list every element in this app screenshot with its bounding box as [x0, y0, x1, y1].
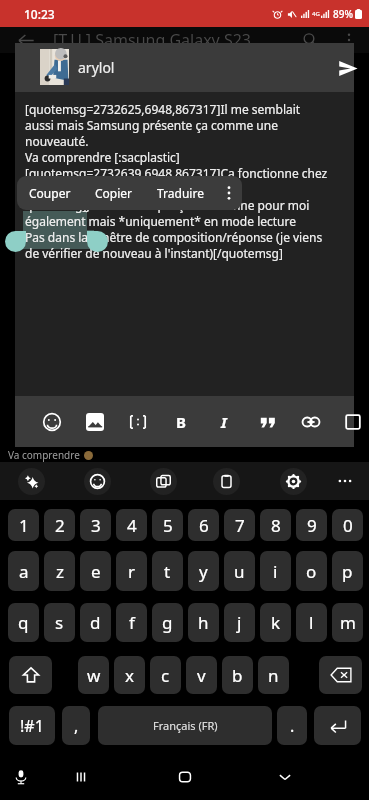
- button[interactable]: Image: [79, 406, 110, 437]
- button[interactable]: Citation: [252, 406, 283, 437]
- button[interactable]: ,: [62, 706, 90, 745]
- button[interactable]: v: [186, 656, 217, 694]
- button[interactable]: y: [188, 551, 219, 591]
- button[interactable]: .: [277, 706, 307, 745]
- staticText: Pas dans la fenêtre de composition/répon…: [25, 229, 323, 245]
- button[interactable]: 1: [8, 509, 39, 541]
- button[interactable]: e: [80, 551, 111, 591]
- button[interactable]: 6: [188, 509, 219, 541]
- button[interactable]: t: [152, 551, 183, 591]
- staticText: i: [273, 560, 278, 583]
- other: Poignée de sélection (fin): [87, 231, 108, 252]
- button[interactable]: z: [44, 551, 75, 591]
- button[interactable]: f: [116, 603, 147, 642]
- staticText: n: [268, 664, 279, 687]
- button[interactable]: w: [78, 656, 109, 694]
- button[interactable]: i: [260, 551, 291, 591]
- staticText: 4G: [312, 10, 320, 18]
- button[interactable]: Accueil: [167, 759, 203, 795]
- button[interactable]: Lien: [295, 406, 326, 437]
- staticText: Va comprendre [:sacplastic]: [25, 149, 180, 165]
- staticText: m: [340, 611, 356, 634]
- staticText: k: [271, 611, 281, 634]
- button[interactable]: s: [44, 603, 75, 642]
- button[interactable]: Presse-papiers: [209, 464, 243, 498]
- button[interactable]: Micro: [3, 759, 39, 795]
- button[interactable]: Plus d'options: [332, 27, 366, 53]
- button[interactable]: !#1: [9, 706, 55, 745]
- button[interactable]: d: [80, 603, 111, 642]
- button[interactable]: o: [296, 551, 327, 591]
- button[interactable]: Couper: [17, 176, 83, 210]
- staticText: p: [342, 560, 353, 583]
- staticText: g: [162, 611, 173, 634]
- button[interactable]: Retour arrière: [319, 656, 362, 694]
- button[interactable]: p: [332, 551, 363, 591]
- staticText: Copier: [95, 185, 133, 201]
- button[interactable]: Plus: [216, 176, 242, 210]
- staticText: z: [56, 560, 64, 583]
- button[interactable]: q: [8, 603, 39, 642]
- button[interactable]: j: [224, 603, 255, 642]
- button[interactable]: g: [152, 603, 183, 642]
- button[interactable]: Copier: [83, 176, 145, 210]
- button[interactable]: Spoiler: [337, 406, 368, 437]
- button[interactable]: Majuscule: [9, 656, 52, 694]
- staticText: [T.U.] Samsung Galaxy S23...: [53, 29, 264, 51]
- button[interactable]: Masquer le clavier: [267, 759, 303, 795]
- staticText: x: [125, 664, 134, 687]
- button[interactable]: 5: [152, 509, 183, 541]
- button[interactable]: Traduire: [145, 176, 216, 210]
- button[interactable]: b: [222, 656, 253, 694]
- button[interactable]: a: [8, 551, 39, 591]
- button[interactable]: r: [116, 551, 147, 591]
- button[interactable]: GIF: [146, 464, 180, 498]
- button[interactable]: 4: [116, 509, 147, 541]
- staticText: [quotemsg=2732625,6948,867317]Il me semb…: [25, 101, 301, 117]
- button[interactable]: Plus: [328, 464, 362, 498]
- staticText: b: [232, 664, 243, 687]
- staticText: 6: [199, 514, 209, 537]
- button[interactable]: Assistant: [14, 464, 48, 498]
- staticText: j: [237, 611, 242, 634]
- staticText: u: [234, 560, 245, 583]
- staticText: arylol: [78, 58, 115, 77]
- button[interactable]: Applications récentes: [63, 759, 99, 795]
- button[interactable]: Emoji: [80, 464, 114, 498]
- button[interactable]: n: [258, 656, 289, 694]
- button[interactable]: m: [332, 603, 363, 642]
- staticText: I: [221, 412, 227, 432]
- staticText: d: [90, 611, 101, 634]
- button[interactable]: Entrée: [314, 706, 361, 745]
- button[interactable]: h: [188, 603, 219, 642]
- button[interactable]: Emoji: [36, 406, 67, 437]
- button[interactable]: Envoyer: [325, 45, 369, 91]
- button[interactable]: Rechercher: [293, 27, 327, 53]
- button[interactable]: 8: [260, 509, 291, 541]
- button[interactable]: Italique: [208, 406, 239, 437]
- staticText: 89%: [333, 7, 353, 21]
- button[interactable]: c: [150, 656, 181, 694]
- button[interactable]: Retour: [8, 27, 44, 53]
- button[interactable]: k: [260, 603, 291, 642]
- staticText: Français (FR): [153, 718, 218, 733]
- staticText: Couper: [29, 185, 71, 201]
- button[interactable]: l: [296, 603, 327, 642]
- staticText: ,: [74, 715, 79, 737]
- button[interactable]: Paramètres: [276, 464, 310, 498]
- button[interactable]: 2: [44, 509, 75, 541]
- staticText: aussi mais Samsung présente ça comme une: [25, 117, 278, 133]
- staticText: .: [290, 715, 295, 737]
- button[interactable]: x: [114, 656, 145, 694]
- button[interactable]: 7: [224, 509, 255, 541]
- button[interactable]: 9: [296, 509, 327, 541]
- button[interactable]: 0: [332, 509, 363, 541]
- button[interactable]: Sticker: [122, 406, 153, 437]
- button[interactable]: Gras: [165, 406, 196, 437]
- staticText: 5: [163, 514, 173, 537]
- staticText: f: [129, 611, 135, 634]
- button[interactable]: Espace: [98, 706, 272, 745]
- button[interactable]: 3: [80, 509, 111, 541]
- staticText: quotemsg]Je confirme que ça fonctionne p…: [25, 197, 310, 213]
- button[interactable]: u: [224, 551, 255, 591]
